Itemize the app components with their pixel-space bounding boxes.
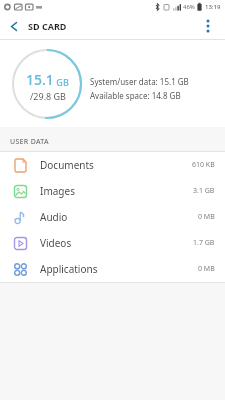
staticText: Audio — [40, 210, 68, 224]
staticText: SD CARD — [28, 20, 67, 32]
staticText: System/user data: 15.1 GB — [90, 76, 189, 87]
button[interactable]: Videos — [0, 230, 225, 256]
staticText: Available space: 14.8 GB — [90, 90, 181, 101]
staticText: USER DATA — [10, 137, 49, 147]
staticText: GB — [54, 76, 69, 88]
staticText: Images — [40, 184, 75, 198]
staticText: 46% — [183, 3, 195, 11]
button[interactable] — [195, 13, 221, 39]
button[interactable]: Documents — [0, 152, 225, 178]
staticText: 1.7 GB — [193, 238, 215, 248]
staticText: 610 KB — [192, 160, 215, 170]
staticText: 13:19 — [205, 3, 221, 11]
staticText: 0 MB — [198, 264, 215, 274]
button[interactable] — [0, 13, 28, 39]
button[interactable]: Applications — [0, 256, 225, 282]
staticText: Videos — [40, 236, 72, 250]
staticText: Documents — [40, 158, 94, 172]
staticText: 15.1 — [26, 70, 54, 89]
staticText: 3.1 GB — [193, 186, 215, 196]
staticText: Applications — [40, 262, 98, 276]
staticText: /29.8 GB — [30, 90, 66, 102]
staticText: 0 MB — [198, 212, 215, 222]
button[interactable]: Audio — [0, 204, 225, 230]
button[interactable]: Images — [0, 178, 225, 204]
